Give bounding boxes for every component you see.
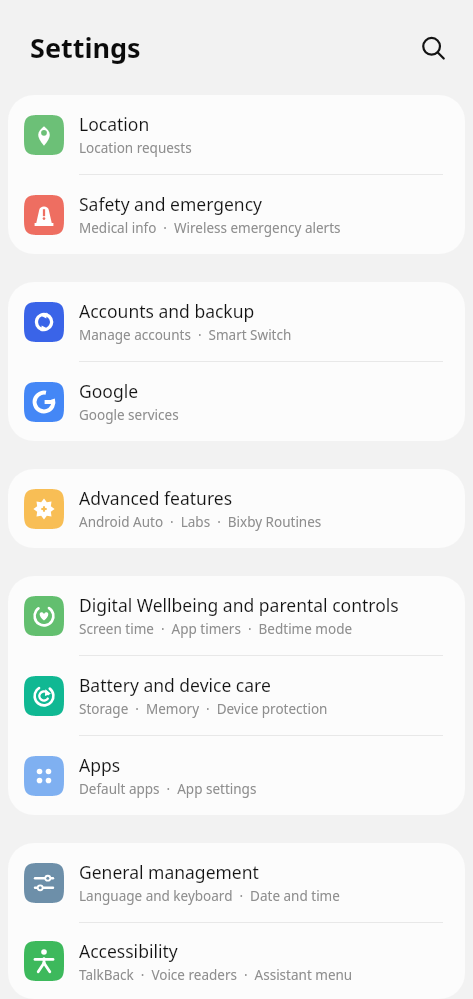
staticText: Google [79, 379, 139, 403]
staticText: Advanced features [79, 486, 233, 510]
staticText: Accessibility [79, 939, 178, 963]
staticText: Storage · Memory · Device protection [79, 700, 328, 718]
staticText: TalkBack · Voice readers · Assistant men… [79, 966, 353, 984]
staticText: Battery and device care [79, 673, 271, 697]
staticText: Google services [79, 406, 179, 424]
staticText: Accounts and backup [79, 299, 255, 323]
staticText: Language and keyboard · Date and time [79, 887, 340, 905]
staticText: Screen time · App timers · Bedtime mode [79, 620, 353, 638]
button[interactable]: Location [8, 95, 465, 174]
button[interactable]: General management [8, 843, 465, 922]
button[interactable]: Advanced features [8, 469, 465, 548]
button[interactable]: Battery and device care [8, 656, 465, 735]
button[interactable]: Search [410, 25, 456, 71]
button[interactable]: Accessibility [8, 923, 465, 999]
staticText: Manage accounts · Smart Switch [79, 326, 292, 344]
staticText: Default apps · App settings [79, 780, 257, 798]
button[interactable]: Accounts and backup [8, 282, 465, 361]
staticText: Location [79, 112, 150, 136]
staticText: Safety and emergency [79, 192, 262, 216]
button[interactable]: Google [8, 362, 465, 441]
staticText: Medical info · Wireless emergency alerts [79, 219, 341, 237]
staticText: Digital Wellbeing and parental controls [79, 593, 399, 617]
button[interactable]: Safety and emergency [8, 175, 465, 254]
staticText: General management [79, 860, 259, 884]
button[interactable]: Digital Wellbeing and parental controls [8, 576, 465, 655]
staticText: Android Auto · Labs · Bixby Routines [79, 513, 322, 531]
staticText: Settings [30, 29, 141, 66]
button[interactable]: Apps [8, 736, 465, 815]
staticText: Location requests [79, 139, 192, 157]
staticText: Apps [79, 753, 121, 777]
